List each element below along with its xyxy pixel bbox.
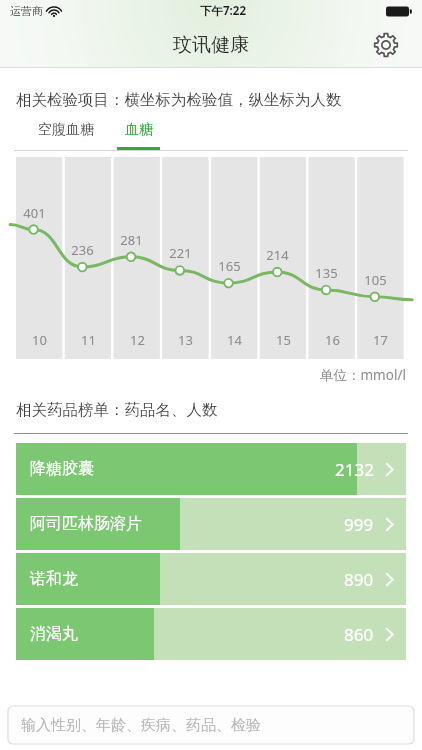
staticText: 236 <box>71 241 94 259</box>
staticText: 下午7:22 <box>200 3 246 19</box>
staticText: 105 <box>364 271 387 289</box>
staticText: 2132 <box>335 458 374 481</box>
staticText: 血糖 <box>125 121 153 139</box>
staticText: 输入性别、年龄、疾病、药品、检验 <box>21 716 261 735</box>
staticText: 281 <box>120 231 143 249</box>
button[interactable]: 血糖 <box>117 119 160 150</box>
staticText: 221 <box>169 244 192 262</box>
staticText: 17 <box>373 331 388 349</box>
staticText: 15 <box>276 331 291 349</box>
button[interactable]: 空腹血糖 <box>36 119 96 141</box>
staticText: 890 <box>344 568 374 591</box>
staticText: 14 <box>227 331 242 349</box>
staticText: 玟讯健康 <box>173 33 249 57</box>
button[interactable]: 诺和龙 <box>16 553 406 605</box>
staticText: 消渴丸 <box>30 624 78 644</box>
staticText: 降糖胶囊 <box>30 459 94 479</box>
staticText: 诺和龙 <box>30 569 78 589</box>
staticText: 12 <box>130 331 145 349</box>
staticText: 214 <box>266 246 289 264</box>
staticText: 相关检验项目：横坐标为检验值，纵坐标为人数 <box>16 90 342 110</box>
staticText: 10 <box>32 331 47 349</box>
button[interactable]: 降糖胶囊 <box>16 443 406 495</box>
staticText: 401 <box>23 204 46 222</box>
staticText: 11 <box>81 331 96 349</box>
staticText: 空腹血糖 <box>38 121 94 139</box>
button[interactable]: 输入性别、年龄、疾病、药品、检验 <box>8 706 414 744</box>
staticText: 单位：mmol/l <box>320 366 406 384</box>
staticText: 阿司匹林肠溶片 <box>30 514 142 534</box>
staticText: 165 <box>218 257 241 275</box>
button[interactable]: 消渴丸 <box>16 608 406 660</box>
staticText: 999 <box>344 513 374 536</box>
button[interactable]: 阿司匹林肠溶片 <box>16 498 406 550</box>
staticText: 13 <box>178 331 193 349</box>
staticText: 135 <box>315 264 338 282</box>
staticText: 运营商 <box>10 4 43 18</box>
staticText: 860 <box>344 623 374 646</box>
button[interactable]: Settings <box>370 29 402 61</box>
staticText: 相关药品榜单：药品名、人数 <box>16 400 218 420</box>
staticText: 16 <box>325 331 340 349</box>
